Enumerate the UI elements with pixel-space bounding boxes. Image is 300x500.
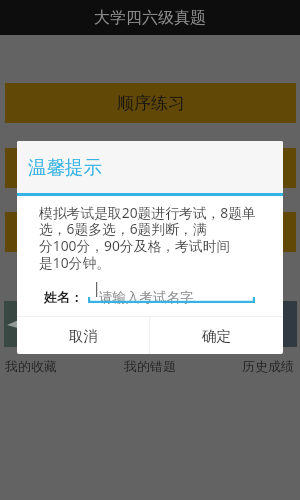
- button[interactable]: 取消: [17, 317, 149, 354]
- button[interactable]: 我的收藏: [5, 358, 57, 374]
- button[interactable]: 我的错题: [124, 358, 176, 374]
- staticText: 我的收藏: [5, 358, 57, 374]
- button[interactable]: 确定: [150, 317, 283, 354]
- staticText: 大学四六级真题: [94, 8, 206, 28]
- staticText: 确定: [202, 327, 231, 345]
- staticText: 顺序练习: [117, 93, 185, 114]
- staticText: 请输入考试名字: [99, 289, 194, 306]
- staticText: 姓名：: [44, 289, 83, 305]
- button[interactable]: 随机练习: [5, 148, 296, 188]
- button[interactable]: 模拟考试: [5, 212, 296, 252]
- staticText: 取消: [69, 327, 98, 345]
- staticText: 我的错题: [124, 358, 176, 374]
- button[interactable]: 我的收藏: [4, 301, 146, 347]
- staticText: 模拟考试是取20题进行考试，8题单 选，6题多选，6题判断，满 分100分，90…: [39, 203, 256, 273]
- button[interactable]: 历史成绩: [242, 358, 294, 374]
- staticText: 历史成绩: [242, 358, 294, 374]
- button[interactable]: 顺序练习: [5, 83, 296, 123]
- staticText: 模拟考试: [117, 222, 185, 243]
- button[interactable]: 历史成绩: [154, 301, 297, 347]
- staticText: 温馨提示: [28, 156, 102, 179]
